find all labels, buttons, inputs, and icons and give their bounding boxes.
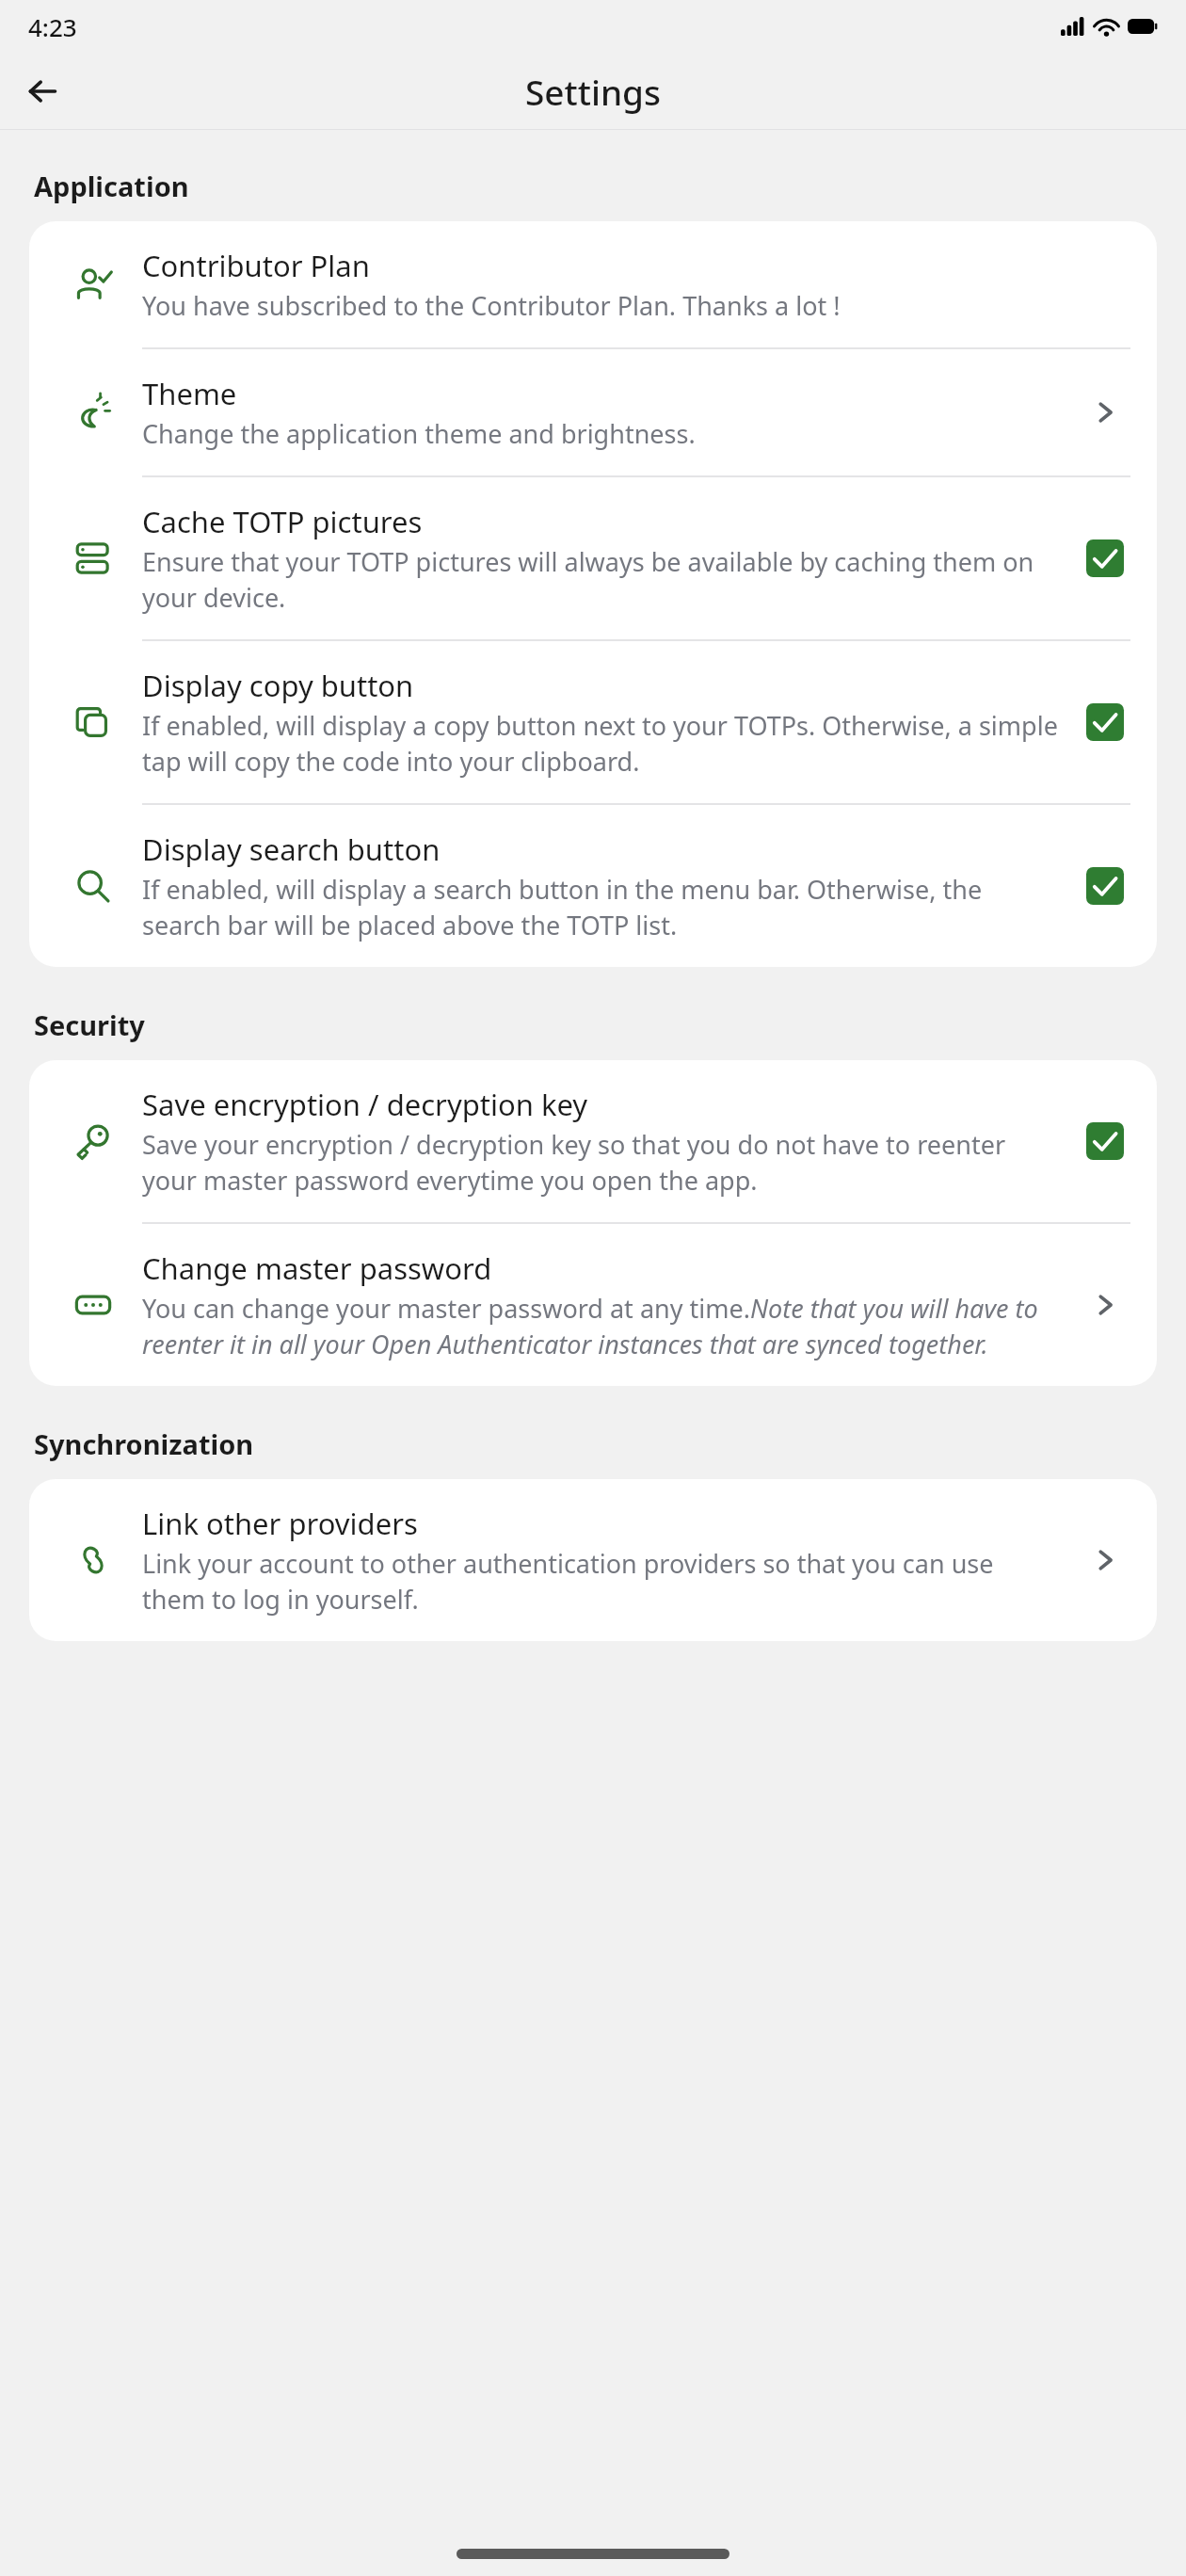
staticText: Save your encryption / decryption key so… <box>142 1127 1063 1198</box>
staticText: If enabled, will display a copy button n… <box>142 708 1063 779</box>
staticText: Link your account to other authenticatio… <box>142 1546 1063 1617</box>
staticText: Theme <box>142 374 237 413</box>
button[interactable]: Open <box>1080 387 1130 438</box>
staticText: 4:23 <box>28 10 77 43</box>
staticText: You can change your master password at a… <box>142 1291 1063 1361</box>
button[interactable]: Cache TOTP pictures <box>29 477 1157 639</box>
button[interactable]: Toggle setting <box>1080 1116 1130 1167</box>
button[interactable]: Change master password <box>29 1224 1157 1386</box>
button[interactable]: Display search button <box>29 805 1157 967</box>
button[interactable]: Toggle setting <box>1080 697 1130 748</box>
staticText: Display search button <box>142 829 441 869</box>
staticText: Change the application theme and brightn… <box>142 416 696 451</box>
staticText: Security <box>34 1006 145 1043</box>
button[interactable]: Back <box>13 62 72 121</box>
button[interactable]: Link other providers <box>29 1479 1157 1641</box>
staticText: Display copy button <box>142 666 414 705</box>
button[interactable]: Toggle setting <box>1080 861 1130 911</box>
button[interactable]: Display copy button <box>29 641 1157 803</box>
staticText: Application <box>34 168 189 204</box>
button[interactable]: Open <box>1080 1280 1130 1330</box>
staticText: Cache TOTP pictures <box>142 502 423 541</box>
staticText: If enabled, will display a search button… <box>142 872 1063 942</box>
staticText: Ensure that your TOTP pictures will alwa… <box>142 544 1063 615</box>
staticText: Contributor Plan <box>142 246 370 285</box>
staticText: Settings <box>525 68 662 115</box>
staticText: Link other providers <box>142 1504 418 1543</box>
staticText: You have subscribed to the Contributor P… <box>142 288 841 323</box>
staticText: Synchronization <box>34 1425 254 1462</box>
button[interactable]: Toggle setting <box>1080 533 1130 584</box>
staticText: Change master password <box>142 1248 492 1288</box>
button[interactable]: Theme <box>29 349 1157 475</box>
staticText: Save encryption / decryption key <box>142 1085 588 1124</box>
button[interactable]: Contributor Plan <box>29 221 1157 347</box>
button[interactable]: Save encryption / decryption key <box>29 1060 1157 1222</box>
button[interactable]: Open <box>1080 1535 1130 1586</box>
